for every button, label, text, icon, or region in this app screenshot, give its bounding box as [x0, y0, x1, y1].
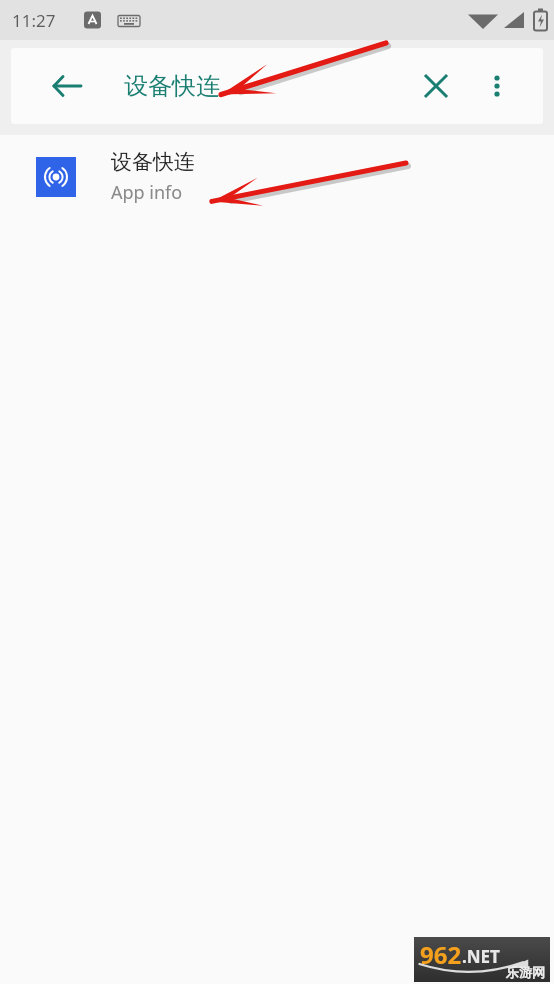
- staticText: 962: [420, 938, 462, 971]
- staticText: 11:27: [12, 9, 56, 32]
- staticText: App info: [111, 180, 183, 205]
- staticText: 设备快连: [111, 149, 195, 175]
- button[interactable]: Back: [44, 63, 90, 109]
- button[interactable]: 设备快连: [0, 135, 554, 219]
- staticText: .NET: [462, 945, 500, 968]
- staticText: 设备快连: [124, 71, 220, 101]
- staticText: 乐游网: [506, 964, 545, 980]
- button[interactable]: Clear: [413, 63, 459, 109]
- button[interactable]: More options: [474, 63, 520, 109]
